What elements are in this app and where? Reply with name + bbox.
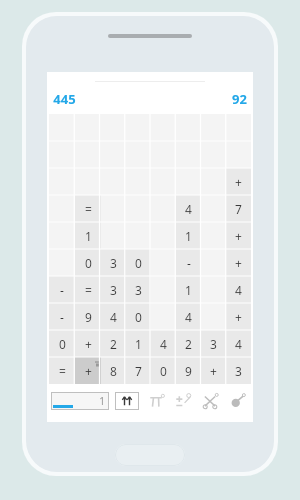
button[interactable]: 92 — [232, 90, 247, 108]
button[interactable]: = — [49, 357, 75, 384]
button[interactable]: 2 — [101, 330, 126, 357]
button[interactable]: 4 — [226, 276, 251, 303]
button[interactable]: 0 — [126, 303, 151, 330]
button[interactable]: 0 — [49, 330, 75, 357]
staticText: + — [85, 336, 92, 352]
button[interactable]: Shape tool — [227, 391, 247, 411]
staticText: + — [210, 363, 217, 379]
button[interactable]: + — [226, 249, 251, 276]
button[interactable]: 0 — [151, 357, 176, 384]
staticText: 1 — [185, 228, 192, 244]
button[interactable]: + — [75, 357, 101, 384]
button[interactable]: 3 — [226, 357, 251, 384]
button[interactable]: - — [176, 249, 201, 276]
button[interactable]: 2 — [176, 330, 201, 357]
button[interactable]: + — [201, 357, 226, 384]
button[interactable]: 0 — [75, 249, 101, 276]
button[interactable]: 4 — [151, 330, 176, 357]
staticText: = — [85, 201, 92, 217]
button[interactable]: = — [75, 195, 101, 222]
button[interactable]: 1 — [51, 392, 109, 410]
button[interactable]: 3 — [101, 249, 126, 276]
button[interactable]: Move up — [115, 392, 139, 410]
button[interactable]: 4 — [176, 303, 201, 330]
staticText: 1 — [99, 394, 105, 408]
button[interactable]: + — [226, 222, 251, 249]
button[interactable]: 4 — [101, 303, 126, 330]
button[interactable]: 9 — [75, 303, 101, 330]
button[interactable]: + — [226, 168, 251, 195]
button[interactable]: 1 — [75, 222, 101, 249]
button[interactable]: 3 — [126, 276, 151, 303]
staticText: + — [235, 309, 242, 325]
button[interactable]: 3 — [101, 276, 126, 303]
button[interactable]: 8 — [101, 357, 126, 384]
button[interactable]: 4 — [226, 330, 251, 357]
button[interactable]: 4 — [176, 195, 201, 222]
staticText: 1 — [85, 228, 92, 244]
button[interactable]: + — [226, 303, 251, 330]
button[interactable]: 1 — [126, 330, 151, 357]
button[interactable]: 9 — [176, 357, 201, 384]
staticText: 8 — [110, 363, 117, 379]
button[interactable]: = — [75, 276, 101, 303]
button[interactable]: 445 — [53, 90, 76, 108]
button[interactable]: 1 — [176, 276, 201, 303]
button[interactable]: - — [49, 303, 75, 330]
button[interactable]: - — [49, 276, 75, 303]
button[interactable]: 3 — [201, 330, 226, 357]
staticText: 9 — [85, 309, 92, 325]
staticText: - — [60, 309, 64, 325]
button[interactable]: + — [75, 330, 101, 357]
button[interactable]: 7 — [226, 195, 251, 222]
button[interactable]: 7 — [126, 357, 151, 384]
button[interactable]: Cut — [200, 391, 220, 411]
button[interactable]: 1 — [176, 222, 201, 249]
staticText: 3 — [110, 282, 117, 298]
button[interactable]: Plus minus power — [173, 391, 193, 411]
button[interactable]: 0 — [126, 249, 151, 276]
button[interactable]: Pi constant — [146, 391, 166, 411]
